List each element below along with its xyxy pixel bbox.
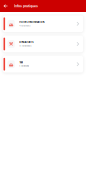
staticText: 11 éléments [19, 45, 31, 47]
button[interactable]: Restaurants [3, 36, 83, 52]
button[interactable]: Back [0, 0, 11, 12]
staticText: Taxi [19, 61, 23, 64]
staticText: Infos pratiques [14, 4, 38, 8]
button[interactable]: Taxi [3, 56, 83, 73]
staticText: 1 élément [19, 65, 29, 67]
staticText: Hôtels recommandés [19, 20, 44, 23]
staticText: Restaurants [19, 41, 33, 44]
staticText: 4 éléments [19, 24, 30, 27]
button[interactable]: Hôtels recommandés [3, 15, 83, 32]
